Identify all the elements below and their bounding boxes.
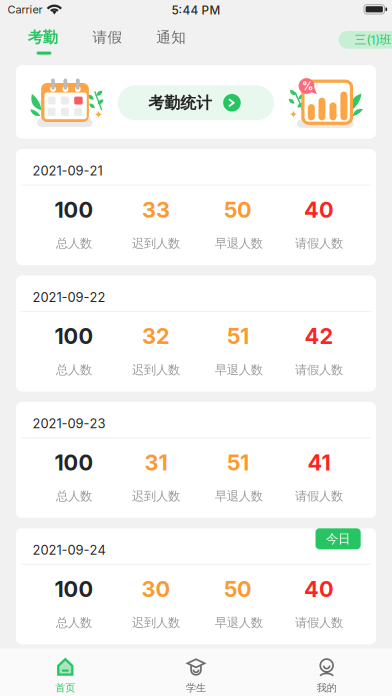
staticText: 请假 (93, 28, 123, 47)
staticText: 30 (141, 576, 170, 602)
staticText: 通知 (156, 28, 186, 47)
staticText: 32 (142, 323, 170, 349)
staticText: 早退人数 (215, 362, 263, 378)
staticText: 2021-09-23 (32, 416, 105, 431)
staticText: 请假人数 (295, 362, 343, 378)
staticText: 41 (307, 449, 330, 476)
staticText: 31 (144, 449, 167, 476)
staticText: 51 (227, 449, 249, 476)
staticText: 请假人数 (295, 489, 343, 504)
staticText: 总人数 (56, 362, 92, 378)
staticText: 早退人数 (215, 489, 263, 504)
button[interactable]: 学生 (131, 649, 261, 696)
staticText: 42 (304, 323, 333, 349)
staticText: Carrier (7, 3, 42, 16)
staticText: 100 (54, 449, 93, 476)
staticText: 33 (142, 197, 170, 223)
button[interactable]: 考勤统计 (16, 65, 172, 100)
staticText: 总人数 (56, 615, 92, 630)
staticText: 迟到人数 (132, 615, 180, 630)
button[interactable]: 三(1)班 (0, 22, 59, 40)
button[interactable]: 通知 (0, 22, 56, 53)
staticText: 早退人数 (215, 236, 263, 251)
staticText: 首页 (55, 682, 75, 694)
staticText: 三(1)班 (354, 32, 391, 47)
staticText: 40 (304, 197, 334, 223)
staticText: 请假人数 (295, 236, 343, 251)
staticText: 考勤统计 (148, 93, 212, 113)
staticText: 50 (224, 197, 252, 223)
staticText: 100 (54, 197, 93, 223)
staticText: 5:44 PM (171, 3, 220, 17)
staticText: % (302, 79, 313, 93)
staticText: 早退人数 (215, 615, 263, 630)
staticText: 考勤 (28, 28, 58, 47)
staticText: 2021-09-21 (32, 163, 102, 179)
staticText: 今日 (326, 531, 350, 547)
button[interactable]: 请假 (0, 22, 56, 53)
staticText: 2021-09-24 (32, 542, 105, 558)
staticText: 100 (54, 323, 93, 349)
staticText: 40 (304, 576, 334, 602)
button[interactable]: 我的 (261, 649, 392, 696)
staticText: 请假人数 (295, 615, 343, 630)
staticText: 迟到人数 (132, 236, 180, 251)
staticText: 51 (227, 323, 249, 349)
staticText: 迟到人数 (132, 489, 180, 504)
staticText: 100 (54, 576, 93, 602)
button[interactable]: 考勤 (0, 22, 56, 53)
staticText: 学生 (186, 682, 206, 694)
staticText: 我的 (317, 682, 337, 694)
staticText: 总人数 (56, 236, 92, 251)
staticText: 总人数 (56, 489, 92, 504)
button[interactable]: 首页 (0, 649, 131, 696)
staticText: 2021-09-22 (32, 289, 105, 305)
staticText: 50 (224, 576, 252, 602)
staticText: 迟到人数 (132, 362, 180, 378)
